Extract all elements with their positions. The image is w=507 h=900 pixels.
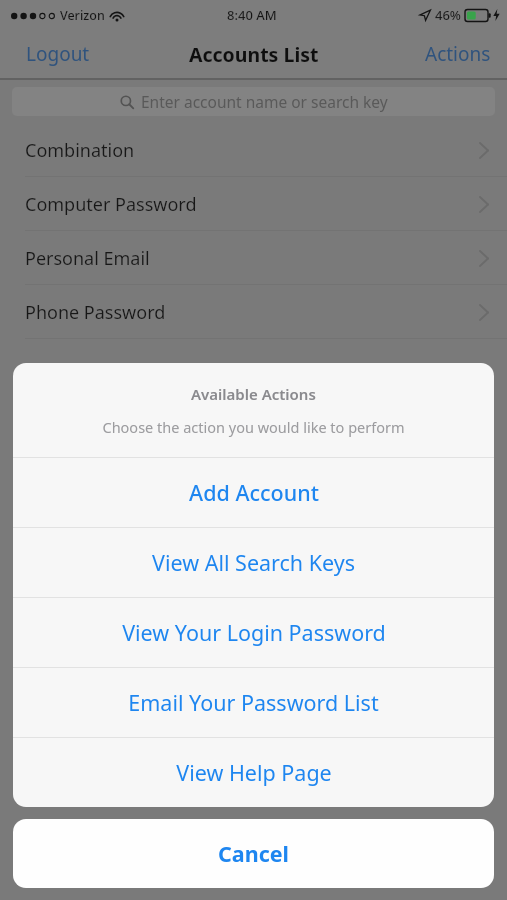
button[interactable]: View Your Login Password [13, 598, 494, 667]
staticText: View Help Page [176, 758, 332, 787]
button[interactable]: Email Your Password List [13, 668, 494, 737]
button[interactable]: Actions [409, 31, 507, 77]
staticText: Choose the action you would like to perf… [102, 417, 405, 437]
button[interactable]: Logout [0, 31, 116, 77]
staticText: Logout [26, 41, 90, 67]
staticText: Accounts List [189, 41, 319, 68]
staticText: Cancel [218, 839, 289, 868]
staticText: Enter account name or search key [141, 91, 388, 112]
staticText: View Your Login Password [122, 618, 386, 647]
staticText: 46% [435, 6, 461, 24]
staticText: Personal Email [25, 246, 150, 271]
staticText: Combination [25, 138, 135, 163]
button[interactable]: View All Search Keys [13, 528, 494, 597]
staticText: Email Your Password List [128, 688, 379, 717]
button[interactable]: Combination [0, 123, 507, 177]
staticText: Add Account [189, 478, 319, 507]
button[interactable]: View Help Page [13, 738, 494, 807]
staticText: Actions [425, 41, 491, 67]
button[interactable]: Enter account name or search key [12, 87, 495, 116]
button[interactable]: Computer Password [0, 177, 507, 231]
button[interactable]: Add Account [13, 458, 494, 527]
button[interactable]: Cancel [13, 819, 494, 888]
button[interactable]: Phone Password [0, 285, 507, 339]
staticText: View All Search Keys [152, 548, 355, 577]
button[interactable]: Personal Email [0, 231, 507, 285]
staticText: Available Actions [191, 384, 316, 404]
staticText: Computer Password [25, 192, 197, 217]
staticText: 8:40 AM [227, 6, 277, 24]
staticText: Verizon [60, 7, 105, 24]
staticText: Phone Password [25, 300, 166, 325]
